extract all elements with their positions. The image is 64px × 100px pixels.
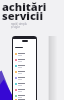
button[interactable] [13,75,36,81]
staticText: achitări servicii [2,0,47,24]
button[interactable] [13,93,36,99]
button[interactable] [13,69,36,75]
button[interactable] [13,87,36,93]
button[interactable] [13,81,36,87]
button[interactable] [13,63,36,69]
staticText: rapid, simplu și sigur [11,22,27,28]
button[interactable] [13,57,36,63]
button[interactable] [13,51,36,57]
button[interactable] [13,99,36,100]
